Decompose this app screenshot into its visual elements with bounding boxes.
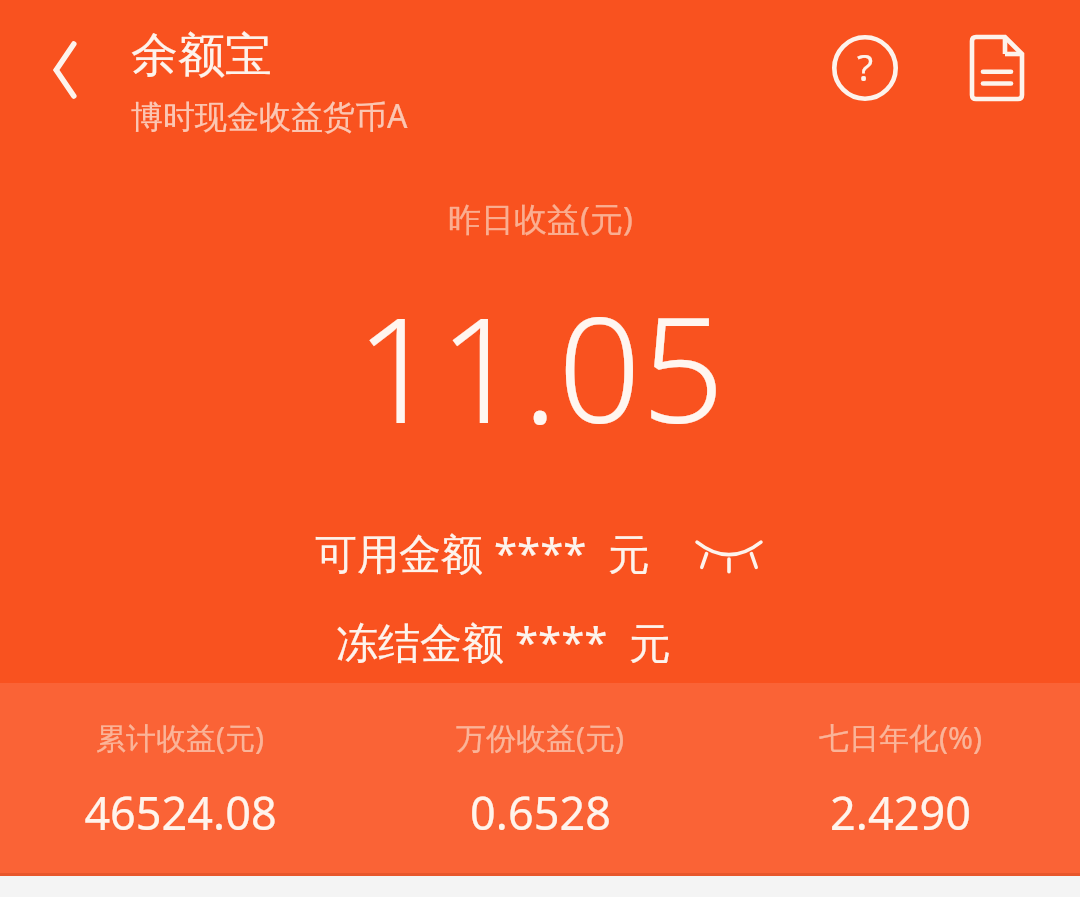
- staticText: ?: [857, 41, 874, 91]
- button[interactable]: 余额宝: [131, 26, 408, 138]
- staticText: 累计收益(元): [96, 717, 264, 758]
- button[interactable]: 七日年化(%): [720, 713, 1080, 847]
- button[interactable]: 可用金额 **** 元: [315, 524, 765, 581]
- staticText: 46524.08: [84, 782, 277, 843]
- button[interactable]: Statement: [950, 22, 1044, 114]
- button[interactable]: 冻结金额 **** 元: [336, 613, 672, 670]
- staticText: 2.4290: [830, 782, 971, 843]
- staticText: 11.05: [355, 267, 725, 466]
- staticText: 万份收益(元): [456, 717, 624, 758]
- staticText: 博时现金收益货币A: [131, 94, 408, 138]
- staticText: 可用金额 **** 元: [315, 524, 651, 581]
- staticText: 0.6528: [470, 782, 611, 843]
- other: Show amount: [693, 529, 765, 577]
- staticText: 余额宝: [131, 26, 272, 85]
- staticText: 昨日收益(元): [448, 196, 633, 241]
- staticText: 七日年化(%): [819, 717, 982, 758]
- button[interactable]: 累计收益(元): [0, 713, 360, 847]
- button[interactable]: Help: [818, 22, 912, 114]
- staticText: 冻结金额 **** 元: [336, 613, 672, 670]
- button[interactable]: Back: [18, 24, 112, 116]
- button[interactable]: 万份收益(元): [360, 713, 720, 847]
